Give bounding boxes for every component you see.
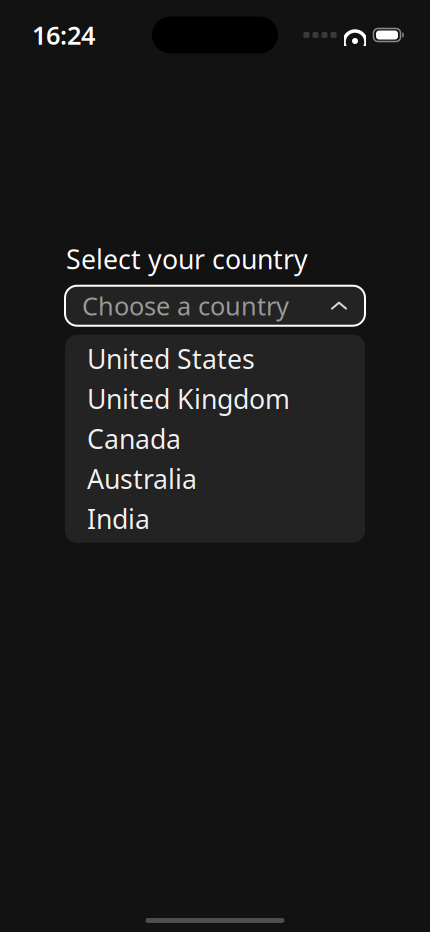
staticText: Select your country	[66, 241, 308, 277]
staticText: United Kingdom	[87, 381, 290, 416]
staticText: United States	[87, 341, 255, 376]
button[interactable]: India	[65, 499, 365, 539]
button[interactable]: Canada	[65, 419, 365, 459]
staticText: Choose a country	[82, 289, 289, 322]
button[interactable]: Australia	[65, 459, 365, 499]
staticText: Canada	[87, 421, 181, 456]
button[interactable]: Choose a country	[65, 286, 365, 326]
staticText: India	[87, 501, 150, 536]
staticText: Australia	[87, 461, 197, 496]
button[interactable]: United Kingdom	[65, 379, 365, 419]
button[interactable]: United States	[65, 339, 365, 379]
staticText: 16:24	[32, 18, 95, 52]
